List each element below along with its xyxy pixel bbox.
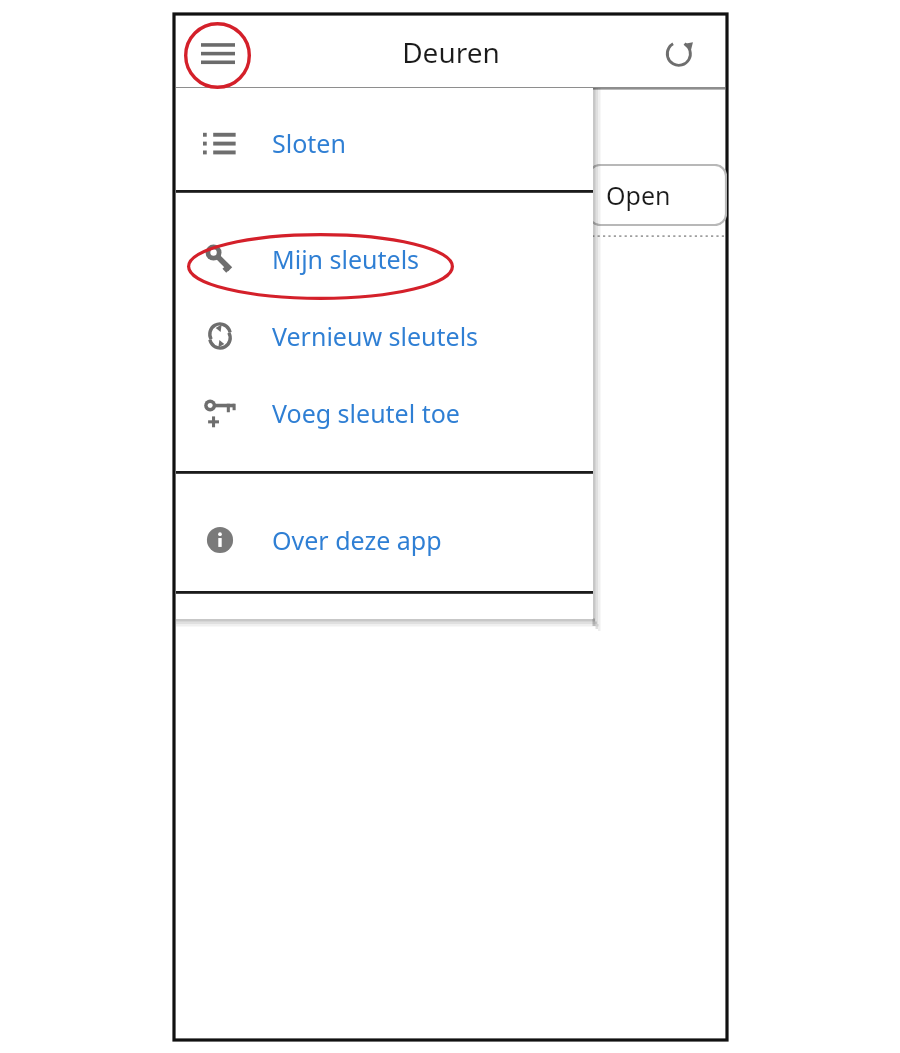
staticText: Over deze app [272,523,442,557]
button[interactable]: Mijn sleutels [176,221,593,297]
button[interactable]: Menu [190,24,246,80]
button[interactable]: Open [588,164,727,226]
staticText: Deuren [402,33,500,71]
button[interactable]: Voeg sleutel toe [176,374,593,451]
staticText: Voeg sleutel toe [272,396,460,430]
button[interactable]: Over deze app [176,502,593,578]
staticText: Sloten [272,126,346,160]
staticText: Vernieuw sleutels [272,319,479,353]
staticText: Open [606,178,671,212]
button[interactable]: Vernieuw sleutels [176,297,593,374]
button[interactable]: Sloten [176,96,593,190]
staticText: Mijn sleutels [272,242,420,276]
button[interactable]: Vernieuwen [651,24,707,80]
